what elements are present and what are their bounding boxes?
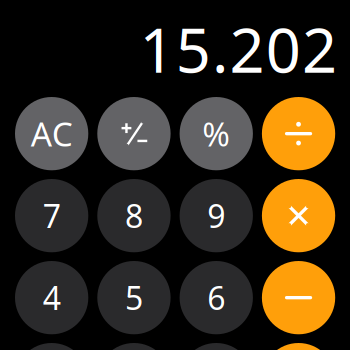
button[interactable]: Multiply: [262, 179, 335, 252]
staticText: 5: [125, 276, 143, 319]
staticText: 15.202: [139, 8, 337, 90]
staticText: AC: [31, 111, 73, 156]
staticText: 7: [43, 194, 61, 237]
button[interactable]: All clear: [15, 97, 88, 170]
button[interactable]: 7: [15, 179, 88, 252]
button[interactable]: 5: [97, 261, 171, 334]
button[interactable]: Toggle sign: [97, 97, 171, 170]
staticText: 9: [207, 194, 225, 237]
button[interactable]: 9: [180, 179, 253, 252]
staticText: %: [202, 111, 230, 156]
staticText: 4: [43, 276, 61, 319]
button[interactable]: 8: [97, 179, 171, 252]
button[interactable]: 3: [180, 343, 253, 350]
staticText: 6: [207, 276, 225, 319]
button[interactable]: 2: [97, 343, 171, 350]
button[interactable]: 6: [180, 261, 253, 334]
button[interactable]: Percent: [180, 97, 253, 170]
button[interactable]: 4: [15, 261, 88, 334]
button[interactable]: Subtract: [262, 261, 335, 334]
button[interactable]: 1: [15, 343, 88, 350]
staticText: 8: [125, 194, 143, 237]
button[interactable]: Add: [262, 343, 335, 350]
button[interactable]: Divide: [262, 97, 335, 170]
